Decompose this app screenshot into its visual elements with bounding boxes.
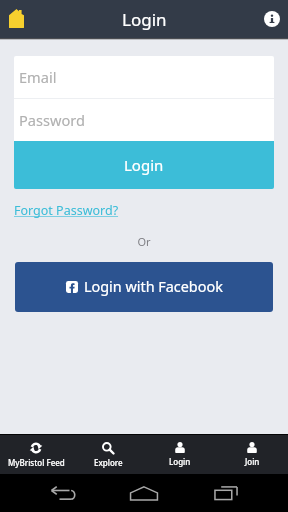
button[interactable]: MyBristol Feed — [0, 435, 72, 474]
staticText: Explore — [94, 457, 123, 468]
staticText: Login — [169, 456, 191, 467]
button[interactable]: Recent apps — [185, 474, 267, 512]
staticText: Login with Facebook — [84, 277, 223, 297]
button[interactable]: Join — [216, 435, 288, 474]
staticText: MyBristol Feed — [8, 457, 65, 468]
staticText: Login — [124, 155, 164, 175]
button[interactable]: Email — [19, 56, 274, 98]
staticText: Password — [19, 110, 86, 130]
button[interactable]: Login with Facebook — [15, 262, 273, 312]
button[interactable]: Forgot Password? — [14, 202, 119, 219]
staticText: Email — [19, 67, 57, 87]
button[interactable]: Explore — [72, 435, 144, 474]
button[interactable]: Information — [259, 6, 285, 32]
button[interactable]: Login — [144, 435, 216, 474]
staticText: Or — [0, 234, 288, 249]
staticText: Forgot Password? — [14, 202, 119, 219]
button[interactable]: Login — [14, 141, 274, 189]
button[interactable]: Home — [103, 474, 185, 512]
staticText: Login — [122, 8, 167, 31]
button[interactable]: Home — [4, 7, 28, 31]
button[interactable]: Password — [19, 99, 274, 141]
staticText: Join — [245, 456, 260, 467]
button[interactable]: Back — [21, 474, 103, 512]
